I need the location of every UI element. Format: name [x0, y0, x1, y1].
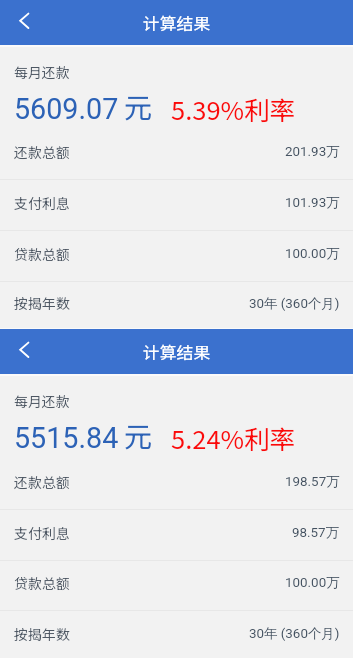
staticText: 支付利息 — [14, 523, 70, 543]
button[interactable]: 贷款总额 — [0, 231, 353, 282]
button[interactable]: 支付利息 — [0, 180, 353, 231]
staticText: 计算结果 — [143, 11, 211, 35]
button[interactable]: 还款总额 — [0, 459, 353, 510]
staticText: 支付利息 — [14, 193, 70, 213]
staticText: 还款总额 — [14, 142, 70, 162]
staticText: 98.57万 — [292, 524, 340, 541]
button[interactable]: 按揭年数 — [0, 611, 353, 658]
button[interactable]: Back — [0, 329, 46, 374]
staticText: 100.00万 — [285, 245, 340, 262]
button[interactable]: Back — [0, 0, 46, 45]
staticText: 100.00万 — [285, 574, 340, 591]
staticText: 5515.84 — [14, 421, 119, 455]
staticText: 5609.07 — [14, 92, 119, 126]
staticText: 元 — [124, 86, 153, 127]
staticText: 5.24%利率 — [171, 419, 296, 456]
staticText: 每月还款 — [14, 62, 70, 82]
staticText: 201.93万 — [285, 143, 340, 160]
staticText: 贷款总额 — [14, 573, 70, 593]
staticText: 30年 (360个月) — [249, 625, 340, 642]
button[interactable]: 支付利息 — [0, 510, 353, 561]
button[interactable]: 还款总额 — [0, 129, 353, 180]
button[interactable]: 贷款总额 — [0, 560, 353, 611]
button[interactable]: 按揭年数 — [0, 282, 353, 330]
staticText: 元 — [124, 415, 153, 456]
staticText: 198.57万 — [285, 473, 340, 490]
staticText: 按揭年数 — [14, 293, 70, 313]
staticText: 按揭年数 — [14, 624, 70, 644]
staticText: 还款总额 — [14, 472, 70, 492]
staticText: 计算结果 — [143, 340, 211, 364]
staticText: 101.93万 — [285, 194, 340, 211]
staticText: 30年 (360个月) — [249, 295, 340, 312]
staticText: 每月还款 — [14, 391, 70, 411]
staticText: 贷款总额 — [14, 244, 70, 264]
staticText: 5.39%利率 — [171, 90, 296, 127]
